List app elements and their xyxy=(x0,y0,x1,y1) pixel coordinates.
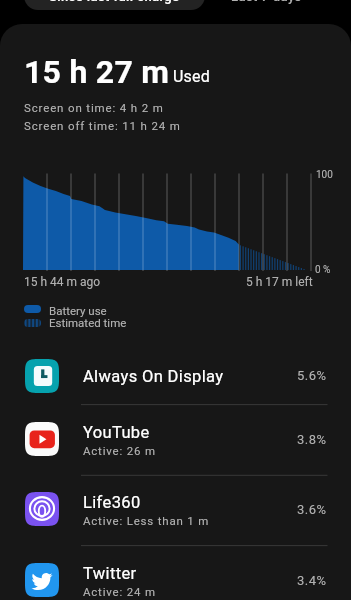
staticText: Screen off time: 11 h 24 m xyxy=(24,119,181,132)
staticText: Life360 xyxy=(83,493,141,512)
button[interactable]: Last 7 days xyxy=(212,0,320,10)
button[interactable]: Since last full charge xyxy=(24,0,205,10)
staticText: 100 xyxy=(316,169,333,181)
staticText: Battery use xyxy=(49,304,107,317)
staticText: Active: 24 m xyxy=(83,585,156,598)
staticText: Since last full charge xyxy=(49,0,180,4)
staticText: Twitter xyxy=(83,564,137,583)
staticText: 3.4% xyxy=(297,573,327,588)
staticText: 15 h 44 m ago xyxy=(24,275,101,289)
button[interactable]: Always On Display xyxy=(0,347,351,404)
staticText: 5 h 17 m left xyxy=(246,275,313,289)
staticText: YouTube xyxy=(83,423,150,442)
staticText: Active: Less than 1 m xyxy=(83,514,210,527)
staticText: 5.6% xyxy=(297,368,327,383)
staticText: Always On Display xyxy=(83,367,224,386)
staticText: Active: 26 m xyxy=(83,444,156,457)
staticText: Screen on time: 4 h 2 m xyxy=(24,101,164,114)
button[interactable]: Twitter xyxy=(0,545,351,600)
staticText: 3.8% xyxy=(297,432,327,447)
button[interactable]: YouTube xyxy=(0,404,351,474)
button[interactable]: Life360 xyxy=(0,474,351,544)
staticText: Last 7 days xyxy=(231,0,302,4)
staticText: Used xyxy=(173,67,210,86)
staticText: 3.6% xyxy=(297,502,327,517)
staticText: 15 h 27 m xyxy=(24,53,170,91)
staticText: 0 % xyxy=(315,264,331,276)
staticText: Estimated time xyxy=(49,316,127,329)
